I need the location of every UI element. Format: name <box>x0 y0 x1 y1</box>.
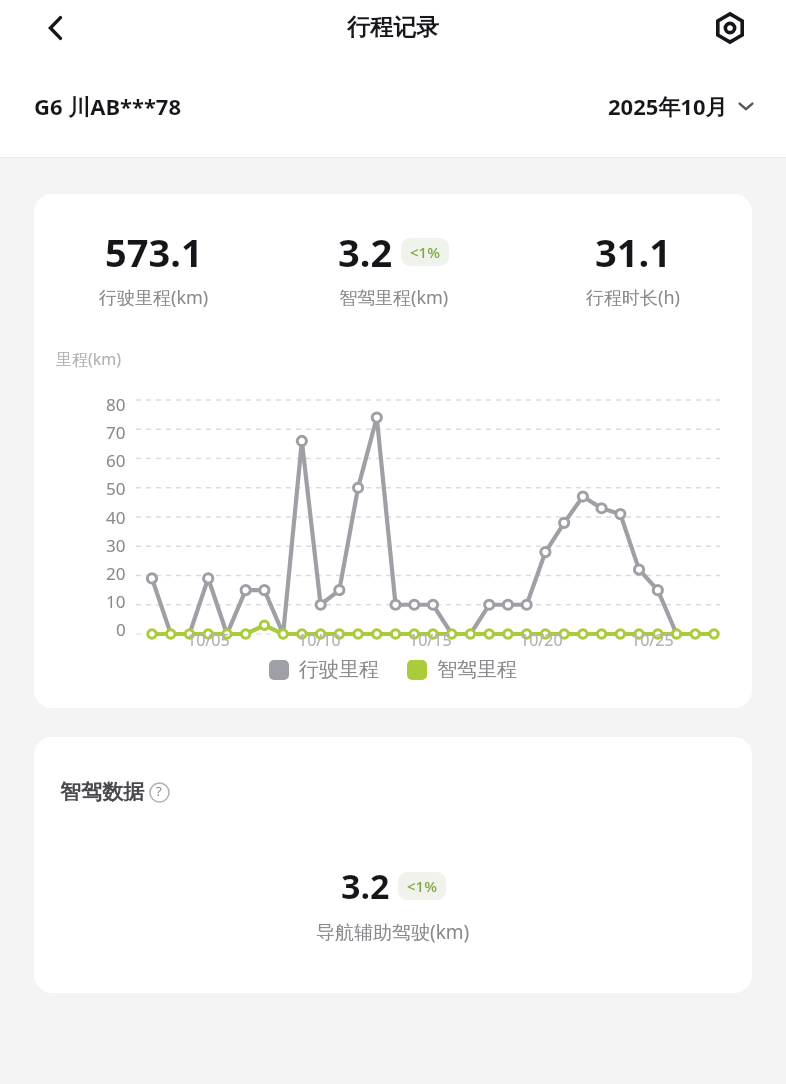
staticText: 3.2 <box>338 226 393 278</box>
staticText: 智驾里程(km) <box>339 285 449 310</box>
staticText: 智驾数据 <box>60 779 144 805</box>
staticText: 10/10 <box>298 629 341 651</box>
staticText: 10/05 <box>187 629 230 651</box>
staticText: 2025年10月 <box>608 91 728 121</box>
staticText: 20 <box>106 562 126 585</box>
staticText: 智驾里程 <box>437 657 517 682</box>
staticText: 30 <box>106 534 126 557</box>
button[interactable]: Settings <box>706 4 754 52</box>
staticText: 行驶里程(km) <box>99 285 209 310</box>
button[interactable]: 智驾数据 <box>60 779 176 805</box>
staticText: 31.1 <box>595 226 671 278</box>
other: Info <box>149 782 170 803</box>
button[interactable]: 2025年10月 <box>608 91 756 121</box>
staticText: 里程(km) <box>56 348 122 370</box>
staticText: 导航辅助驾驶(km) <box>316 919 470 945</box>
staticText: 40 <box>106 506 126 529</box>
button[interactable]: 行驶里程 <box>269 657 379 682</box>
staticText: <1% <box>407 876 437 896</box>
staticText: 50 <box>106 477 126 500</box>
staticText: 0 <box>116 618 126 641</box>
staticText: 行驶里程 <box>299 657 379 682</box>
staticText: 10 <box>106 590 126 613</box>
staticText: 10/15 <box>409 629 452 651</box>
staticText: 10/25 <box>631 629 674 651</box>
button[interactable]: Back <box>32 4 80 52</box>
staticText: 行程时长(h) <box>586 285 680 310</box>
staticText: 80 <box>106 393 126 416</box>
staticText: 70 <box>106 421 126 444</box>
staticText: G6 川AB***78 <box>34 91 182 121</box>
button[interactable]: 智驾里程 <box>407 657 517 682</box>
staticText: 10/20 <box>520 629 563 651</box>
staticText: 行程记录 <box>347 13 439 42</box>
staticText: <1% <box>410 242 440 262</box>
staticText: 60 <box>106 449 126 472</box>
staticText: ? <box>156 782 162 800</box>
staticText: 573.1 <box>105 226 203 278</box>
staticText: 3.2 <box>341 863 390 909</box>
